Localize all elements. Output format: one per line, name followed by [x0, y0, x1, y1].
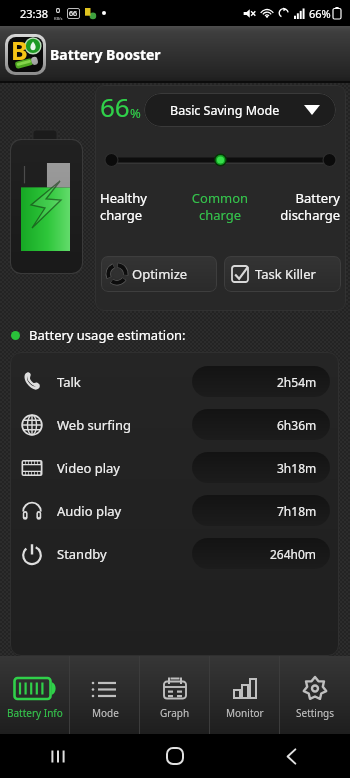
- staticText: Mode: [92, 706, 119, 720]
- button[interactable]: Web surfing: [10, 403, 339, 446]
- staticText: 66%: [309, 6, 331, 21]
- staticText: B: [11, 37, 28, 67]
- staticText: 6h36m: [277, 417, 317, 433]
- staticText: Battery discharge: [260, 189, 340, 224]
- button[interactable]: Mode: [70, 656, 140, 734]
- staticText: Common charge: [180, 189, 260, 224]
- button[interactable]: Basic Saving Mode: [144, 93, 336, 127]
- staticText: Monitor: [226, 706, 264, 720]
- button[interactable]: Battery Info: [0, 656, 70, 734]
- staticText: 23:38: [20, 6, 49, 21]
- staticText: Optimize: [132, 265, 188, 283]
- staticText: Battery Booster: [50, 45, 161, 64]
- staticText: Standby: [57, 545, 107, 563]
- staticText: 7h18m: [277, 503, 317, 519]
- button[interactable]: Video play: [10, 446, 339, 489]
- button[interactable]: Talk: [10, 360, 339, 403]
- staticText: KB/s: [54, 16, 63, 21]
- staticText: 66: [100, 89, 130, 124]
- staticText: 0: [56, 6, 61, 16]
- staticText: Web surfing: [57, 416, 132, 434]
- button[interactable]: Standby: [10, 532, 339, 575]
- button[interactable]: Graph: [140, 656, 210, 734]
- staticText: 66: [69, 9, 78, 19]
- staticText: %: [130, 104, 141, 122]
- staticText: Basic Saving Mode: [170, 102, 280, 119]
- staticText: Graph: [160, 706, 190, 720]
- button[interactable]: Task Killer: [224, 256, 341, 292]
- staticText: Video play: [57, 459, 120, 477]
- button[interactable]: Monitor: [210, 656, 280, 734]
- button[interactable]: Audio play: [10, 489, 339, 532]
- button[interactable]: Home: [116, 734, 233, 778]
- staticText: 2h54m: [277, 374, 317, 390]
- staticText: Talk: [57, 373, 81, 391]
- staticText: 3h18m: [277, 460, 317, 476]
- button[interactable]: Settings: [280, 656, 350, 734]
- button[interactable]: Recent apps: [0, 734, 116, 778]
- staticText: Settings: [296, 706, 335, 720]
- staticText: Audio play: [57, 502, 122, 520]
- button[interactable]: Back: [233, 734, 350, 778]
- staticText: Task Killer: [255, 265, 316, 283]
- staticText: Healthy charge: [100, 189, 180, 224]
- staticText: Battery Info: [7, 706, 63, 720]
- staticText: 264h0m: [270, 546, 317, 562]
- staticText: Battery usage estimation:: [29, 326, 186, 344]
- button[interactable]: Optimize: [101, 256, 217, 292]
